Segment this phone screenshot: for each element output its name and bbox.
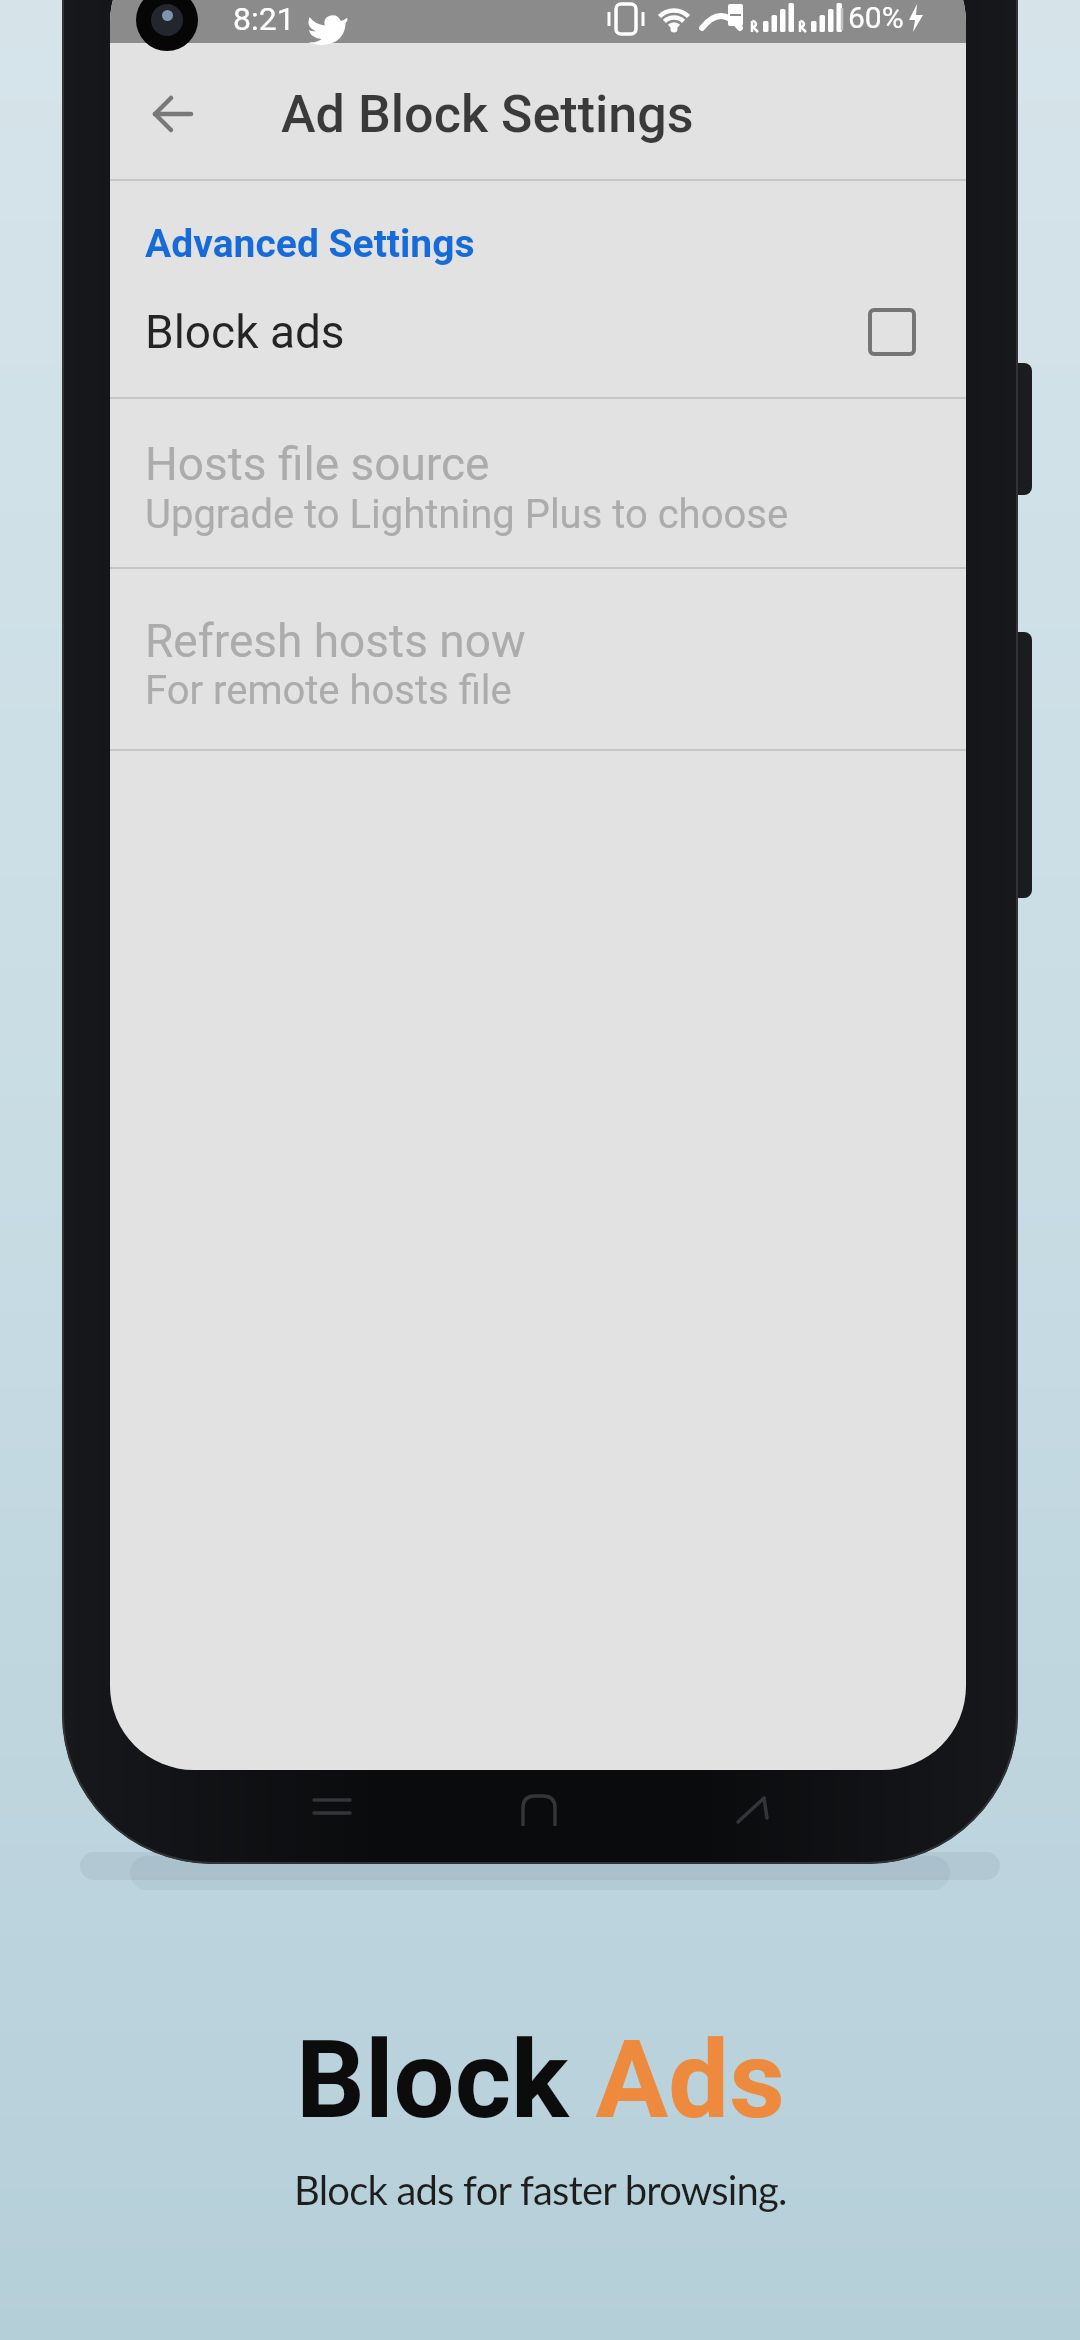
staticText: Block ads for faster browsing. [294,2166,787,2214]
staticText: Block ads [145,305,345,359]
button[interactable] [137,78,209,150]
staticText: Block Ads [296,2017,785,2144]
button[interactable]: Block ads [110,263,966,397]
button[interactable]: Hosts file source [110,399,966,567]
button[interactable]: Refresh hosts now [110,569,966,749]
staticText: Upgrade to Lightning Plus to choose [145,491,789,538]
staticText: Hosts file source [145,437,490,491]
staticText: Advanced Settings [145,221,475,267]
staticText: 8:21 [233,0,295,32]
staticText: Refresh hosts now [145,614,526,668]
staticText: Ad Block Settings [281,84,694,145]
staticText: For remote hosts file [145,667,512,714]
staticText: 60% [848,0,904,35]
